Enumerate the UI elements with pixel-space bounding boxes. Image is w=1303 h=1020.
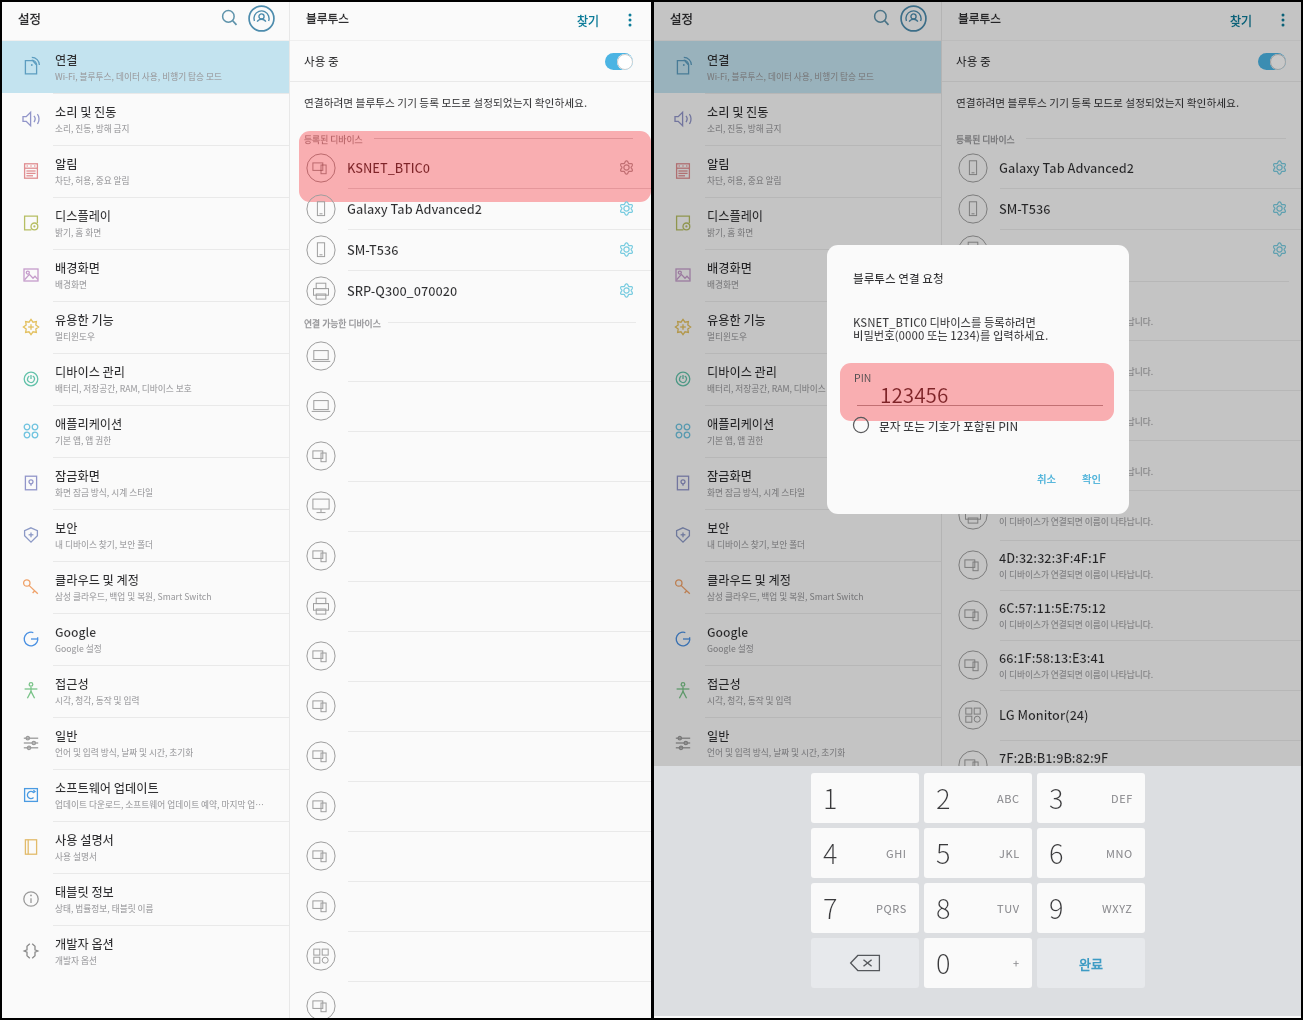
button[interactable]: Account	[248, 5, 275, 32]
button[interactable]: LG Monitor(24)	[942, 690, 1303, 740]
button[interactable]: 8	[924, 883, 1032, 933]
button[interactable]: 4D:32:32:3F:4F:1F	[942, 540, 1303, 590]
button[interactable]: SRP-Q300_070020	[942, 229, 1303, 270]
button[interactable]: 7	[811, 883, 919, 933]
button[interactable]: 6	[1037, 828, 1145, 878]
button[interactable]: Backspace	[811, 938, 919, 988]
button[interactable]: 클라우드 및 계정	[654, 561, 941, 613]
button[interactable]: SM-T536	[290, 229, 651, 270]
button[interactable]	[290, 681, 651, 731]
button[interactable]: 클라우드 및 계정	[2, 561, 289, 613]
button[interactable]: 이 디바이스가 연결되면 이름이 나타납니다.	[942, 490, 1303, 540]
button[interactable]: 디바이스 관리	[2, 353, 289, 405]
button[interactable]: 개발자 옵션	[654, 925, 941, 977]
button[interactable]: 디바이스 관리	[654, 353, 941, 405]
button[interactable]: Google	[2, 613, 289, 665]
button[interactable]: More options	[621, 11, 639, 29]
button[interactable]: Galaxy Tab Advanced2	[290, 188, 651, 229]
button[interactable]: 소프트웨어 업데이트	[2, 769, 289, 821]
button[interactable]: 연결	[654, 41, 941, 93]
button[interactable]: 7F:2B:B1:9B:82:9F	[942, 740, 1303, 790]
button[interactable]: 완료	[1037, 938, 1145, 988]
button[interactable]: 사용 중	[942, 41, 1303, 81]
button[interactable]: Device settings	[618, 241, 635, 258]
button[interactable]	[290, 631, 651, 681]
button[interactable]: 66:1F:58:13:E3:41	[942, 640, 1303, 690]
button[interactable]	[290, 881, 651, 931]
button[interactable]: 소리 및 진동	[2, 93, 289, 145]
button[interactable]: 소프트웨어 업데이트	[654, 769, 941, 821]
button[interactable]: 사용 중	[290, 41, 651, 81]
button[interactable]: 태블릿 정보	[654, 873, 941, 925]
button[interactable]: KSNET_BTIC0	[290, 147, 651, 188]
button[interactable]	[290, 581, 651, 631]
button[interactable]: 찾기	[1224, 8, 1259, 32]
button[interactable]: More options	[1274, 11, 1292, 29]
button[interactable]: 잠금화면	[2, 457, 289, 509]
button[interactable]: SM-T536	[942, 188, 1303, 229]
button[interactable]: Account	[900, 5, 927, 32]
button[interactable]: Device settings	[1271, 241, 1288, 258]
button[interactable]: 6C:57:11:5E:75:12	[942, 590, 1303, 640]
button[interactable]: 9	[1037, 883, 1145, 933]
button[interactable]: Search	[873, 9, 891, 27]
button[interactable]: 이 디바이스가 연결되면 이름이 나타납니다.	[942, 340, 1303, 390]
button[interactable]: 사용 설명서	[2, 821, 289, 873]
button[interactable]: 알림	[2, 145, 289, 197]
button[interactable]: 유용한 기능	[654, 301, 941, 353]
button[interactable]: Search	[221, 9, 239, 27]
button[interactable]	[290, 331, 651, 381]
button[interactable]: Device settings	[618, 282, 635, 299]
button[interactable]: 2	[924, 773, 1032, 823]
button[interactable]: 배경화면	[2, 249, 289, 301]
button[interactable]	[290, 731, 651, 781]
button[interactable]: SRP-Q300_070020	[290, 270, 651, 311]
button[interactable]: 배경화면	[654, 249, 941, 301]
button[interactable]: 개발자 옵션	[2, 925, 289, 977]
button[interactable]: Device settings	[618, 200, 635, 217]
button[interactable]: 일반	[654, 717, 941, 769]
button[interactable]	[290, 481, 651, 531]
button[interactable]: 유용한 기능	[2, 301, 289, 353]
button[interactable]: 사용 설명서	[654, 821, 941, 873]
button[interactable]	[290, 981, 651, 1020]
button[interactable]: 설정	[2, 0, 289, 41]
button[interactable]: 취소	[1029, 465, 1065, 492]
button[interactable]: Device settings	[1271, 159, 1288, 176]
button[interactable]: 이 디바이스가 연결되면 이름이 나타납니다.	[942, 390, 1303, 440]
button[interactable]: 접근성	[654, 665, 941, 717]
button[interactable]: 일반	[2, 717, 289, 769]
button[interactable]: 태블릿 정보	[2, 873, 289, 925]
button[interactable]: Device settings	[1271, 200, 1288, 217]
button[interactable]	[290, 431, 651, 481]
button[interactable]: 이 디바이스가 연결되면 이름이 나타납니다.	[942, 290, 1303, 340]
button[interactable]	[290, 831, 651, 881]
button[interactable]	[290, 531, 651, 581]
button[interactable]: 애플리케이션	[2, 405, 289, 457]
button[interactable]: 잠금화면	[654, 457, 941, 509]
button[interactable]: 접근성	[2, 665, 289, 717]
button[interactable]: 4	[811, 828, 919, 878]
button[interactable]: 디스플레이	[2, 197, 289, 249]
button[interactable]	[290, 931, 651, 981]
button[interactable]: 찾기	[571, 8, 606, 32]
button[interactable]	[290, 781, 651, 831]
button[interactable]: 디스플레이	[654, 197, 941, 249]
button[interactable]	[290, 381, 651, 431]
button[interactable]: 확인	[1074, 465, 1110, 492]
button[interactable]: 5	[924, 828, 1032, 878]
button[interactable]: 보안	[654, 509, 941, 561]
button[interactable]: 1	[811, 773, 919, 823]
button[interactable]: 이 디바이스가 연결되면 이름이 나타납니다.	[942, 440, 1303, 490]
button[interactable]: Google	[654, 613, 941, 665]
button[interactable]: Galaxy Tab Advanced2	[942, 147, 1303, 188]
button[interactable]: 설정	[654, 0, 941, 41]
button[interactable]: Device settings	[618, 159, 635, 176]
button[interactable]: 애플리케이션	[654, 405, 941, 457]
button[interactable]: 보안	[2, 509, 289, 561]
button[interactable]: 소리 및 진동	[654, 93, 941, 145]
button[interactable]: 3	[1037, 773, 1145, 823]
button[interactable]: 0	[924, 938, 1032, 988]
button[interactable]: 알림	[654, 145, 941, 197]
button[interactable]: 연결	[2, 41, 289, 93]
